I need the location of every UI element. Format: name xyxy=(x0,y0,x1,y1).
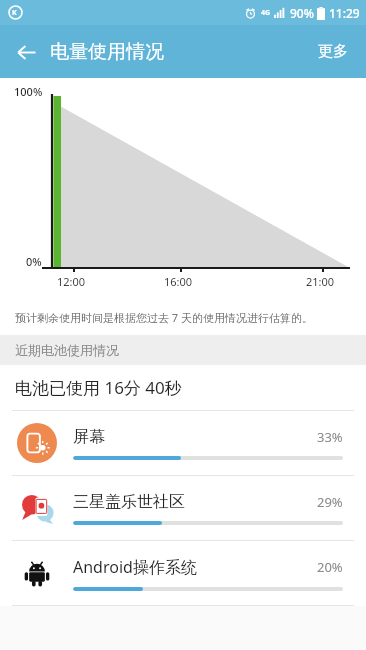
button[interactable]: 返回 xyxy=(8,34,44,70)
staticText: 三星盖乐世社区 xyxy=(73,492,317,512)
button[interactable]: 更多 xyxy=(302,30,364,73)
staticText: 0% xyxy=(26,254,42,269)
staticText: 更多 xyxy=(318,42,348,61)
button[interactable]: 三星盖乐世社区 xyxy=(0,476,366,540)
staticText: 4G xyxy=(261,8,271,18)
staticText: 20% xyxy=(317,558,343,576)
button[interactable]: Android操作系统 xyxy=(0,541,366,605)
staticText: 屏幕 xyxy=(73,427,317,447)
button[interactable]: 电池已使用 16分 40秒 xyxy=(0,365,366,410)
staticText: 21:00 xyxy=(306,274,335,289)
staticText: 33% xyxy=(317,428,343,446)
staticText: 16:00 xyxy=(164,274,193,289)
staticText: 11:29 xyxy=(329,5,360,21)
staticText: 12:00 xyxy=(57,274,86,289)
staticText: 90% xyxy=(290,5,314,21)
staticText: 近期电池使用情况 xyxy=(15,342,119,358)
staticText: 预计剩余使用时间是根据您过去 7 天的使用情况进行估算的。 xyxy=(15,310,314,325)
staticText: K xyxy=(12,8,17,18)
staticText: 电池已使用 16分 40秒 xyxy=(15,376,182,399)
staticText: 29% xyxy=(317,493,343,511)
button[interactable]: 屏幕 xyxy=(0,411,366,475)
staticText: 电量使用情况 xyxy=(50,40,164,64)
staticText: 100% xyxy=(14,84,43,99)
staticText: Android操作系统 xyxy=(73,556,317,578)
